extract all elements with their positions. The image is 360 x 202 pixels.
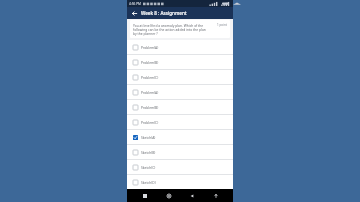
staticText: Problem(C) — [141, 75, 159, 79]
staticText: 4:56 PM — [129, 2, 141, 6]
button[interactable]: Problem(B) — [127, 55, 233, 69]
staticText: Problem(A) — [141, 90, 159, 94]
staticText: Sketch(D) — [141, 180, 156, 184]
button[interactable]: Problem(A) — [127, 85, 233, 99]
button[interactable]: Sketch(C) — [127, 160, 233, 174]
staticText: You at level find a anomaly plan. Which … — [133, 23, 204, 27]
button[interactable]: Problem(B) — [127, 100, 233, 114]
staticText: Sketch(C) — [141, 165, 156, 169]
staticText: by the planner ? — [133, 31, 158, 35]
staticText: Problem(C) — [141, 120, 159, 124]
button[interactable]: Problem(A) — [127, 40, 233, 54]
button[interactable]: Sketch(B) — [127, 145, 233, 159]
button[interactable]: Problem(C) — [127, 70, 233, 84]
button[interactable]: Sketch(D) — [127, 175, 233, 189]
staticText: Problem(B) — [141, 60, 159, 64]
staticText: Problem(A) — [141, 45, 159, 49]
staticText: Week 8 : Assignment — [141, 10, 187, 16]
button[interactable]: Scroll up — [209, 189, 222, 202]
staticText: Sketch(A) — [141, 135, 156, 139]
button[interactable]: Back — [127, 7, 141, 19]
button[interactable]: Recent apps — [138, 189, 151, 202]
button[interactable]: You at level find a anomaly plan. Which … — [130, 20, 230, 38]
staticText: following can be the action added into t… — [133, 27, 206, 31]
button[interactable]: Home — [162, 189, 175, 202]
staticText: 1 point — [217, 23, 227, 27]
button[interactable]: Problem(C) — [127, 115, 233, 129]
button[interactable]: Back — [185, 189, 198, 202]
staticText: Sketch(B) — [141, 150, 156, 154]
staticText: Problem(B) — [141, 105, 159, 109]
button[interactable]: Sketch(A) — [127, 130, 233, 144]
